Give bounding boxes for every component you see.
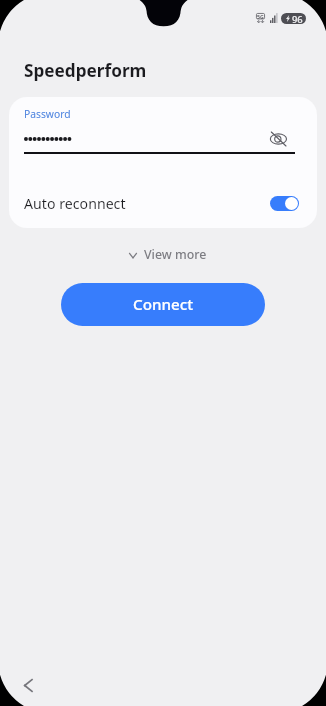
staticText: Connect — [133, 294, 193, 315]
staticText: Password — [24, 107, 71, 121]
button[interactable]: Auto reconnect — [9, 192, 317, 214]
button[interactable]: Back — [13, 670, 43, 700]
staticText: Auto reconnect — [24, 194, 270, 213]
button[interactable]: Password field — [9, 128, 317, 150]
staticText: 96 — [292, 13, 303, 24]
button[interactable]: Show password — [267, 128, 289, 150]
staticText: 5G — [257, 13, 264, 20]
staticText: Speedperform — [24, 59, 147, 82]
staticText: View more — [144, 246, 207, 263]
button[interactable]: Connect — [61, 283, 265, 326]
button[interactable]: View more — [112, 242, 215, 267]
